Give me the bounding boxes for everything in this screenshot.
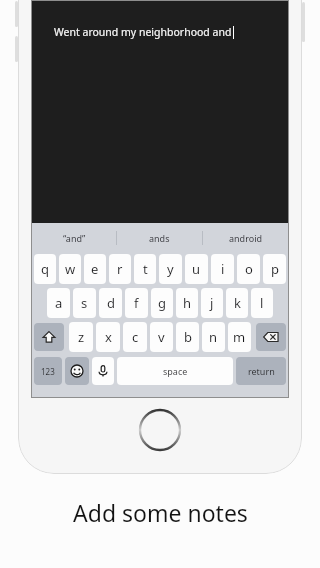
- staticText: return: [248, 365, 275, 377]
- staticText: e: [91, 260, 99, 278]
- button[interactable]: Emoji: [65, 357, 89, 385]
- staticText: y: [167, 260, 174, 278]
- button[interactable]: o: [237, 254, 260, 284]
- staticText: j: [210, 294, 214, 312]
- button[interactable]: space: [117, 357, 233, 385]
- button[interactable]: w: [59, 254, 81, 284]
- button[interactable]: p: [263, 254, 286, 284]
- button[interactable]: Dictation: [92, 357, 114, 385]
- button[interactable]: h: [176, 288, 198, 318]
- button[interactable]: j: [201, 288, 223, 318]
- button[interactable]: Add some notes: [0, 497, 320, 528]
- button[interactable]: c: [123, 322, 147, 352]
- staticText: t: [143, 260, 148, 278]
- staticText: o: [245, 260, 253, 278]
- staticText: ands: [149, 232, 170, 244]
- button[interactable]: return: [236, 357, 286, 385]
- staticText: g: [158, 294, 166, 312]
- button[interactable]: v: [150, 322, 173, 352]
- button[interactable]: Shift: [34, 323, 64, 351]
- staticText: l: [260, 294, 264, 312]
- staticText: s: [81, 294, 88, 312]
- staticText: i: [221, 260, 225, 278]
- staticText: q: [41, 260, 49, 278]
- staticText: w: [65, 260, 76, 278]
- staticText: b: [184, 328, 192, 346]
- staticText: 123: [41, 366, 55, 377]
- button[interactable]: b: [176, 322, 199, 352]
- staticText: n: [209, 328, 218, 346]
- staticText: Went around my neighborhood and: [54, 25, 232, 39]
- button[interactable]: e: [84, 254, 106, 284]
- button[interactable]: k: [226, 288, 248, 318]
- button[interactable]: q: [34, 254, 56, 284]
- button[interactable]: g: [151, 288, 173, 318]
- button[interactable]: r: [109, 254, 131, 284]
- button[interactable]: y: [159, 254, 182, 284]
- button[interactable]: u: [185, 254, 208, 284]
- button[interactable]: x: [96, 322, 120, 352]
- staticText: a: [55, 294, 63, 312]
- staticText: f: [134, 294, 139, 312]
- button[interactable]: Delete: [256, 323, 286, 351]
- staticText: x: [105, 328, 112, 346]
- staticText: u: [192, 260, 201, 278]
- button[interactable]: “and”: [32, 223, 116, 252]
- button[interactable]: i: [211, 254, 234, 284]
- staticText: k: [234, 294, 241, 312]
- button[interactable]: a: [47, 288, 70, 318]
- button[interactable]: z: [69, 322, 93, 352]
- staticText: r: [117, 260, 123, 278]
- button[interactable]: t: [134, 254, 156, 284]
- button[interactable]: android: [203, 223, 288, 252]
- staticText: v: [158, 328, 165, 346]
- button[interactable]: s: [73, 288, 96, 318]
- staticText: c: [132, 328, 139, 346]
- button[interactable]: n: [202, 322, 225, 352]
- staticText: z: [78, 328, 85, 346]
- button[interactable]: f: [125, 288, 148, 318]
- staticText: d: [107, 294, 115, 312]
- staticText: Add some notes: [73, 497, 248, 528]
- button[interactable]: 123: [34, 357, 62, 385]
- staticText: “and”: [63, 232, 86, 244]
- staticText: h: [183, 294, 192, 312]
- button[interactable]: ands: [117, 223, 202, 252]
- staticText: p: [271, 260, 279, 278]
- button[interactable]: l: [251, 288, 273, 318]
- button[interactable]: Went around my neighborhood and: [32, 0, 288, 223]
- button[interactable]: m: [228, 322, 251, 352]
- staticText: m: [233, 328, 246, 346]
- button[interactable]: Home: [138, 408, 182, 452]
- button[interactable]: d: [99, 288, 122, 318]
- staticText: space: [163, 365, 188, 377]
- staticText: android: [229, 232, 262, 244]
